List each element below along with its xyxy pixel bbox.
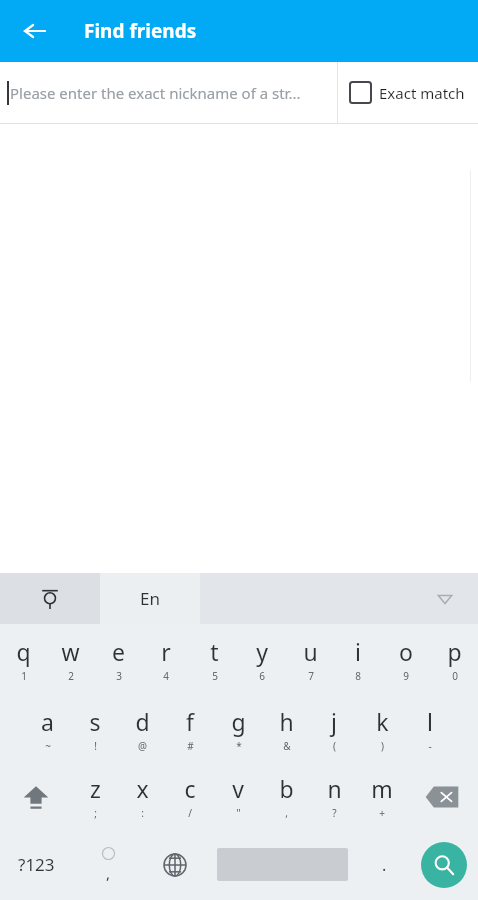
staticText: + [379,806,385,820]
button[interactable]: Voice input [0,573,100,624]
staticText: t [210,636,219,667]
staticText: h [279,706,294,737]
staticText: ( [333,739,336,753]
button[interactable]: u [286,624,334,694]
staticText: : [141,806,144,820]
staticText: 1 [21,669,27,683]
button[interactable]: i [334,624,382,694]
button[interactable]: v [214,764,262,829]
staticText: e [112,636,125,667]
staticText: En [140,587,160,610]
staticText: y [256,636,268,667]
button[interactable]: h [262,694,310,764]
staticText: x [136,773,149,804]
staticText: q [16,636,31,667]
staticText: # [187,739,194,753]
button[interactable]: x [119,764,166,829]
button[interactable]: z [72,764,119,829]
button[interactable]: r [142,624,190,694]
staticText: l [427,706,433,737]
button[interactable]: d [118,694,166,764]
button[interactable]: a [24,694,71,764]
staticText: ) [381,739,384,753]
button[interactable]: t [190,624,238,694]
button[interactable]: En [100,573,200,624]
button[interactable]: Backspace [406,764,478,829]
button[interactable]: k [358,694,406,764]
button[interactable]: Emoji and comma [72,829,144,900]
staticText: b [279,773,294,804]
staticText: ?123 [18,853,55,876]
button[interactable]: g [214,694,262,764]
button[interactable]: f [166,694,214,764]
staticText: s [89,706,101,737]
button[interactable]: b [262,764,310,829]
staticText: ? [332,806,337,820]
staticText: c [184,773,196,804]
staticText: g [231,706,246,737]
staticText: ~ [45,739,51,753]
staticText: 3 [116,669,122,683]
staticText: Find friends [84,18,197,44]
staticText: , [106,863,111,883]
button[interactable]: Exact match [338,62,478,123]
button[interactable]: Search [410,829,478,900]
button[interactable]: Shift [0,764,72,829]
staticText: Exact match [379,83,465,103]
staticText: j [331,706,337,737]
staticText: 8 [355,669,361,683]
staticText: w [61,636,80,667]
staticText: - [428,739,432,753]
button[interactable]: q [0,624,47,694]
staticText: ! [94,739,97,753]
staticText: 2 [68,669,74,683]
staticText: i [355,636,361,667]
staticText: 7 [308,669,314,683]
button[interactable]: y [238,624,286,694]
staticText: 0 [452,669,458,683]
button[interactable]: ?123 [0,829,72,900]
staticText: a [41,706,54,737]
button[interactable]: n [310,764,358,829]
staticText: r [161,636,171,667]
staticText: " [236,806,241,820]
staticText: u [303,636,318,667]
staticText: z [90,773,101,804]
staticText: d [135,706,150,737]
button[interactable]: Please enter the exact nickname of a str… [0,62,337,123]
staticText: 4 [163,669,169,683]
staticText: 9 [403,669,409,683]
staticText: Please enter the exact nickname of a str… [10,83,301,103]
button[interactable]: e [94,624,142,694]
staticText: o [399,636,413,667]
button[interactable]: Change language [144,829,206,900]
button[interactable]: Back [12,8,58,54]
staticText: k [376,706,389,737]
staticText: ; [94,806,97,820]
button[interactable]: p [430,624,478,694]
button[interactable]: c [166,764,214,829]
staticText: f [186,706,194,737]
button[interactable]: . [358,829,410,900]
button[interactable]: w [47,624,94,694]
button[interactable]: Hide keyboard [200,573,478,624]
button[interactable]: o [382,624,430,694]
staticText: 5 [212,669,218,683]
staticText: . [382,854,387,876]
staticText: n [327,773,342,804]
button[interactable]: m [358,764,406,829]
button[interactable]: Space [206,829,358,900]
button[interactable]: s [71,694,118,764]
button[interactable]: j [310,694,358,764]
staticText: 6 [259,669,265,683]
staticText: / [188,806,192,820]
staticText: @ [138,739,147,753]
button[interactable]: l [406,694,454,764]
staticText: & [283,739,291,753]
staticText: , [285,806,288,820]
staticText: p [447,636,462,667]
staticText: * [236,739,242,753]
staticText: m [371,773,393,804]
staticText: v [232,773,244,804]
